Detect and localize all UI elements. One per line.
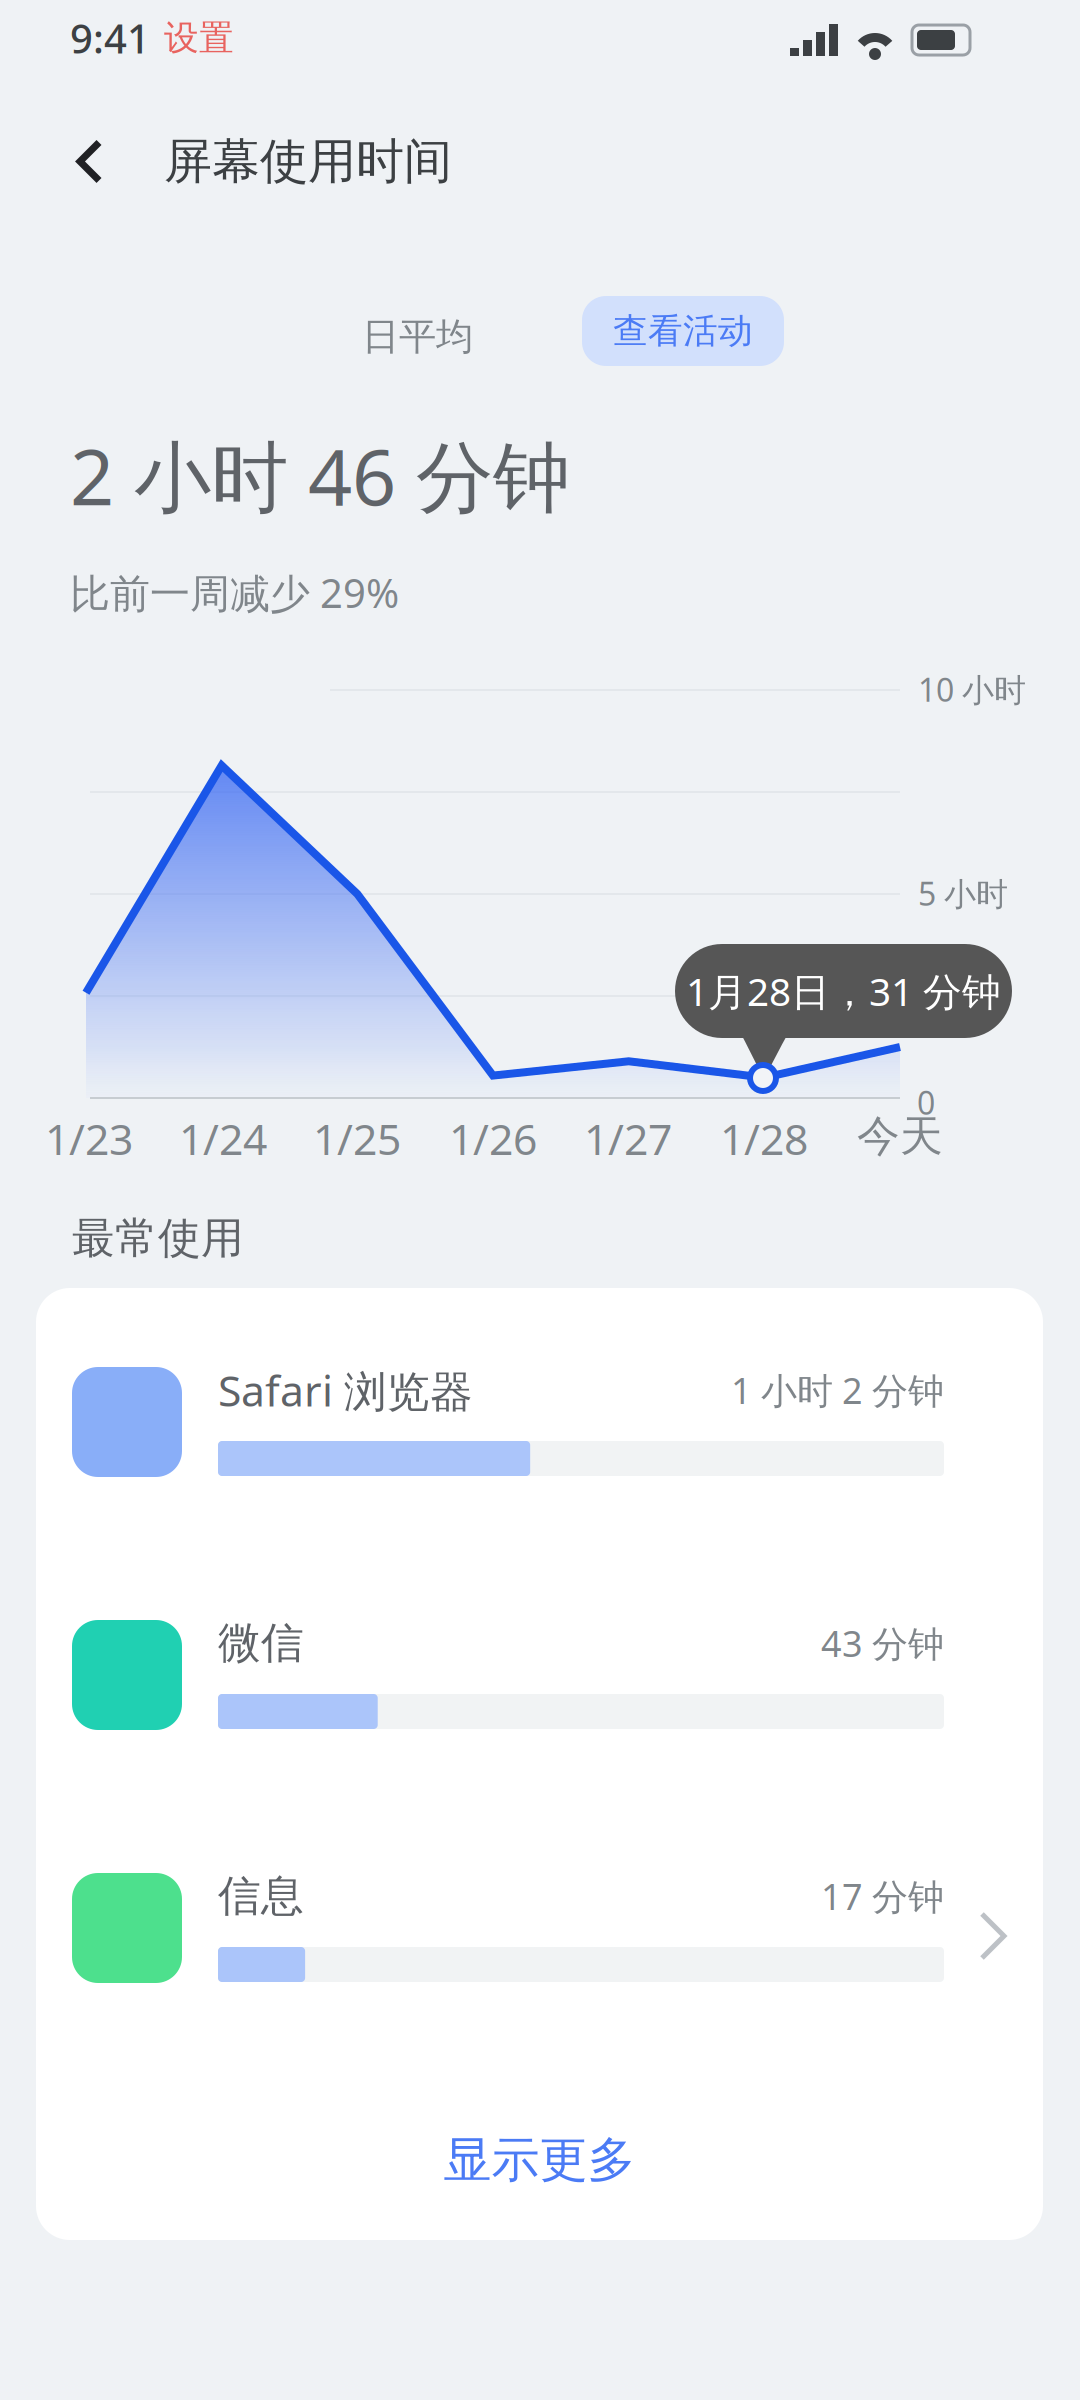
staticText: 17 分钟	[821, 1872, 944, 1920]
staticText: 查看活动	[613, 310, 753, 352]
staticText: 5 小时	[918, 872, 1008, 914]
staticText: 1月28日，31 分钟	[686, 965, 1001, 1017]
staticText: 信息	[218, 1870, 304, 1922]
staticText: 1 小时 2 分钟	[731, 1366, 944, 1414]
staticText: 0	[917, 1081, 935, 1123]
staticText: 2 小时 46 分钟	[70, 424, 570, 527]
staticText: 1/27	[584, 1110, 672, 1167]
staticText: 显示更多	[443, 2130, 635, 2189]
staticText: 设置	[164, 17, 234, 59]
button[interactable]: 屏幕使用时间	[124, 132, 452, 191]
staticText: 1/26	[449, 1110, 537, 1167]
staticText: 比前一周减少 29%	[70, 566, 399, 619]
staticText: 屏幕使用时间	[164, 132, 452, 191]
staticText: 9:41	[70, 11, 150, 64]
staticText: Safari 浏览器	[218, 1362, 473, 1418]
button[interactable]: 信息	[36, 1873, 1043, 2126]
staticText: 1/28	[720, 1110, 808, 1167]
staticText: 1/25	[313, 1110, 401, 1167]
staticText: 微信	[218, 1617, 304, 1669]
button[interactable]: 返回	[68, 133, 124, 189]
staticText: 今天	[857, 1110, 943, 1162]
staticText: 10 小时	[918, 668, 1026, 710]
button[interactable]: Safari 浏览器	[36, 1367, 1043, 1620]
button[interactable]: 微信	[36, 1620, 1043, 1873]
button[interactable]: 查看活动	[582, 296, 784, 366]
staticText: 1/24	[179, 1110, 267, 1167]
staticText: 43 分钟	[821, 1619, 944, 1667]
staticText: 1/23	[45, 1110, 133, 1167]
staticText: 日平均	[362, 314, 473, 360]
staticText: 最常使用	[72, 1212, 244, 1264]
button[interactable]: 显示更多	[36, 2125, 1043, 2195]
